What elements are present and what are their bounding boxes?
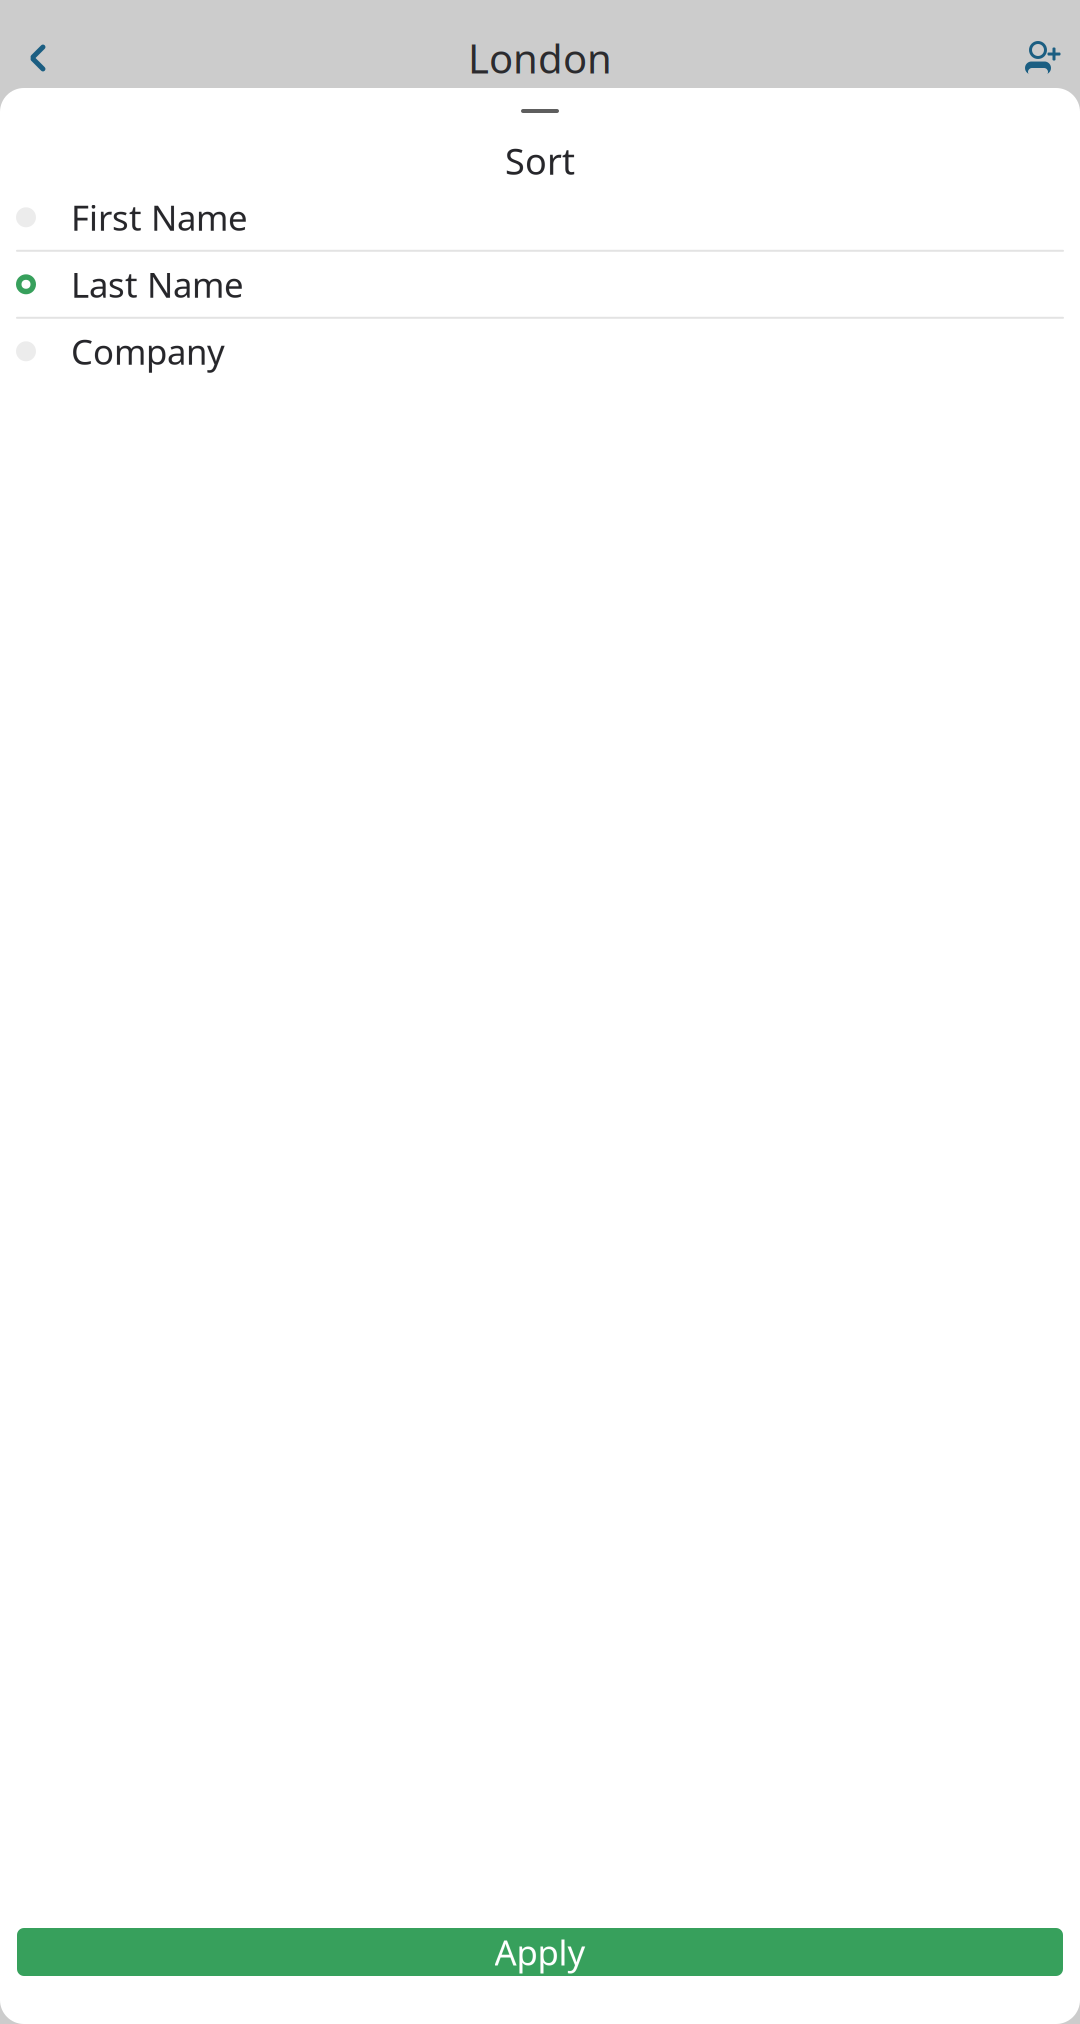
staticText: Sort [505, 137, 575, 185]
staticText: Last Name [71, 261, 244, 307]
button[interactable]: Checked In [540, 126, 1080, 168]
staticText: Company [71, 328, 225, 374]
button[interactable]: Registered [0, 126, 540, 168]
staticText: Apply [494, 1929, 585, 1975]
button[interactable]: Add person [1014, 30, 1070, 86]
button[interactable]: Last Name [0, 252, 1080, 317]
staticText: First Name [71, 194, 248, 240]
button[interactable]: Company [0, 319, 1080, 384]
button[interactable]: Apply [17, 1928, 1063, 1976]
button[interactable]: Back [10, 30, 66, 86]
staticText: London [468, 31, 612, 84]
button[interactable]: First Name [0, 185, 1080, 250]
